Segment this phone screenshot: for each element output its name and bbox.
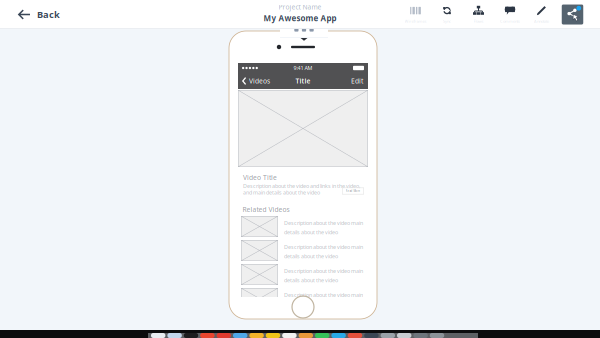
button[interactable]: Wireframes — [400, 0, 430, 29]
staticText: details about the video — [284, 229, 338, 236]
button[interactable]: Description about the video main — [241, 240, 365, 263]
staticText: Wireframes — [404, 19, 426, 24]
staticText: Description about the video main — [284, 267, 363, 275]
staticText: Description about the video and links in… — [243, 182, 360, 190]
button[interactable]: Annotate — [526, 0, 556, 29]
staticText: Project Name — [278, 3, 321, 11]
button[interactable]: Description about the video main — [241, 216, 365, 239]
staticText: Sync — [443, 19, 451, 24]
staticText: Related Videos — [242, 205, 289, 214]
staticText: Description about the video main — [284, 291, 363, 299]
button[interactable]: Comments — [495, 0, 525, 29]
button[interactable]: Read More — [342, 187, 364, 194]
staticText: Title — [295, 77, 310, 85]
staticText: Annotate — [534, 19, 549, 24]
button[interactable]: Description about the video main — [241, 288, 365, 311]
staticText: Description about the video main — [284, 243, 363, 251]
staticText: details about the video — [284, 277, 338, 284]
button[interactable]: Videos — [238, 73, 274, 89]
button[interactable]: Back — [0, 0, 68, 29]
button[interactable]: Share — [559, 0, 585, 29]
staticText: Flows — [473, 19, 483, 24]
staticText: details about the video — [284, 253, 338, 260]
button[interactable]: Flows — [463, 0, 493, 29]
staticText: details about the video — [284, 301, 338, 308]
staticText: Comments — [500, 19, 520, 24]
button[interactable]: Edit — [346, 73, 368, 89]
staticText: Videos — [249, 77, 270, 85]
staticText: Back — [37, 8, 60, 21]
staticText: Edit — [351, 77, 363, 85]
button[interactable]: Sync — [432, 0, 462, 29]
button[interactable]: Screen options — [280, 22, 328, 38]
staticText: and main details about the video — [243, 189, 320, 196]
staticText: Description about the video main — [284, 219, 363, 227]
staticText: 9:41 AM — [293, 64, 312, 72]
button[interactable]: Description about the video main — [241, 264, 365, 287]
staticText: Video Title — [243, 173, 277, 182]
staticText: My Awesome App — [263, 13, 336, 23]
staticText: Read More — [345, 189, 360, 193]
